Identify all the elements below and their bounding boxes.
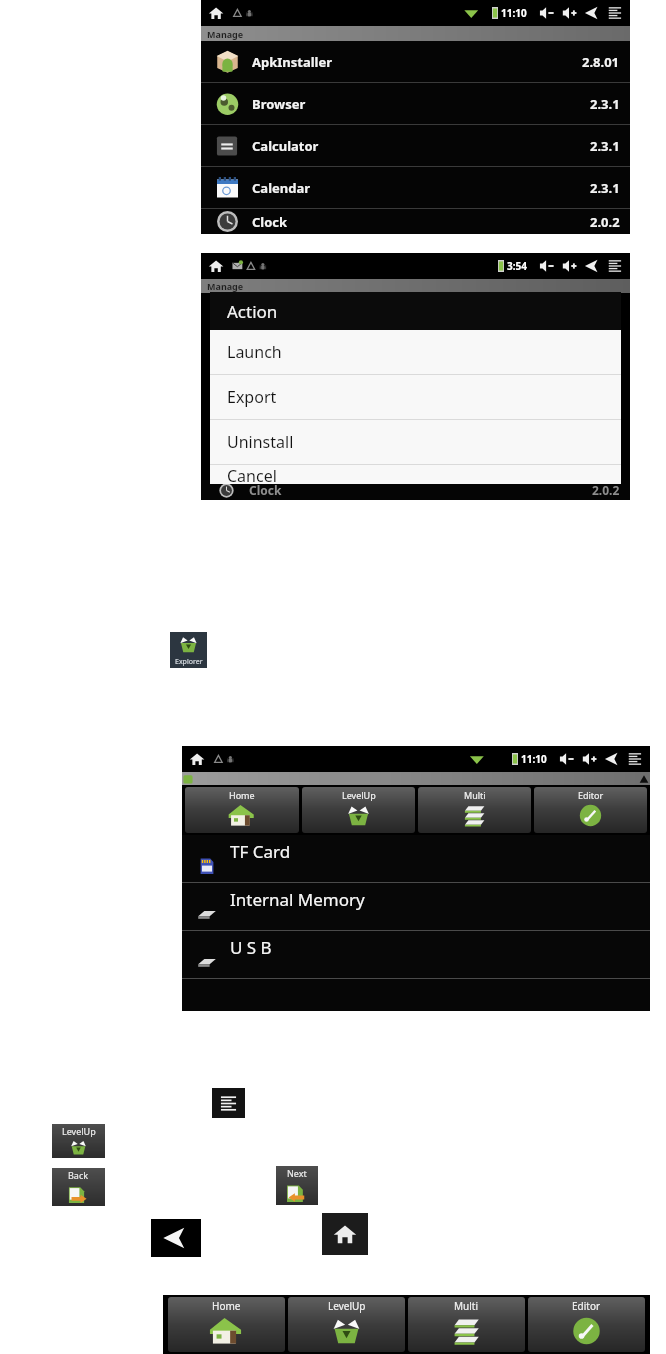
staticText: 2.3.1	[590, 179, 620, 197]
button[interactable]: U S B	[182, 931, 650, 978]
staticText: Manage	[207, 280, 244, 292]
staticText: ApkInstaller	[252, 53, 582, 71]
button[interactable]: Multi	[418, 787, 531, 833]
button[interactable]: Export	[210, 375, 621, 419]
button[interactable]: Explorer	[170, 632, 207, 668]
staticText: Editor	[572, 1299, 601, 1313]
button[interactable]: Home	[322, 1213, 368, 1255]
staticText: 2.8.01	[582, 53, 620, 71]
staticText: Clock	[249, 482, 592, 498]
staticText: Home	[212, 1299, 241, 1313]
button[interactable]: Menu	[212, 1088, 245, 1118]
staticText: Editor	[578, 789, 604, 801]
staticText: LevelUp	[342, 789, 376, 801]
button[interactable]: Multi	[408, 1297, 525, 1352]
button[interactable]: Editor	[528, 1297, 645, 1352]
button[interactable]: Back	[151, 1219, 201, 1257]
staticText: Action	[227, 300, 278, 323]
button[interactable]: Cancel	[210, 465, 621, 484]
button[interactable]: Browser	[201, 83, 630, 124]
staticText: LevelUp	[328, 1299, 366, 1313]
staticText: Clock	[252, 213, 590, 231]
staticText: 11:10	[521, 752, 547, 766]
button[interactable]: Clock	[201, 209, 630, 234]
staticText: Calculator	[252, 137, 590, 155]
button[interactable]: Home	[185, 787, 299, 833]
button[interactable]: LevelUp	[52, 1124, 105, 1158]
staticText: Export	[227, 386, 277, 408]
staticText: Browser	[252, 95, 590, 113]
button[interactable]: Internal Memory	[182, 883, 650, 930]
staticText: 11:10	[501, 6, 527, 20]
staticText: Uninstall	[227, 431, 294, 453]
staticText: Multi	[454, 1299, 479, 1313]
button[interactable]: LevelUp	[302, 787, 415, 833]
staticText: Multi	[464, 789, 486, 801]
staticText: 2.3.1	[590, 137, 620, 155]
staticText: LevelUp	[62, 1125, 96, 1137]
staticText: 2.0.2	[592, 482, 620, 498]
staticText: Calendar	[252, 179, 590, 197]
button[interactable]: Editor	[534, 787, 647, 833]
button[interactable]: Back	[52, 1168, 105, 1206]
staticText: Next	[287, 1167, 307, 1179]
button[interactable]: Uninstall	[210, 420, 621, 464]
staticText: Explorer	[175, 657, 203, 667]
button[interactable]: Launch	[210, 330, 621, 374]
staticText: U S B	[230, 936, 272, 959]
button[interactable]: ApkInstaller	[201, 41, 630, 82]
button[interactable]: TF Card	[182, 835, 650, 882]
button[interactable]: Next	[276, 1166, 318, 1205]
button[interactable]: Calculator	[201, 125, 630, 166]
staticText: Home	[229, 789, 255, 801]
staticText: 2.0.2	[590, 213, 620, 231]
staticText: 3:54	[507, 259, 527, 273]
staticText: Cancel	[227, 465, 277, 484]
button[interactable]: Home	[168, 1297, 285, 1352]
staticText: Launch	[227, 341, 282, 363]
button[interactable]: Calendar	[201, 167, 630, 208]
staticText: Internal Memory	[230, 888, 365, 911]
button[interactable]: LevelUp	[288, 1297, 405, 1352]
staticText: Manage	[207, 28, 244, 40]
staticText: TF Card	[230, 840, 291, 863]
staticText: Back	[68, 1169, 89, 1181]
staticText: 2.3.1	[590, 95, 620, 113]
